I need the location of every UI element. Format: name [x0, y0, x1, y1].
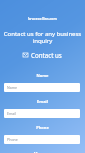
button[interactable]: Email	[4, 109, 80, 118]
button[interactable]: Email	[0, 50, 85, 60]
button[interactable]: Name	[4, 83, 80, 92]
staticText: Contact us for any business inquiry	[0, 30, 85, 45]
staticText: Phone	[7, 137, 18, 142]
staticText: Name	[7, 85, 18, 90]
button[interactable]: Phone	[4, 135, 80, 144]
staticText: Phone	[0, 125, 85, 130]
staticText: Name	[0, 73, 85, 78]
staticText: Message	[0, 151, 85, 153]
staticText: Contact us	[31, 51, 62, 59]
other: Email	[23, 53, 28, 57]
staticText: Email	[0, 99, 85, 104]
staticText: brucecollins.com	[0, 16, 85, 21]
staticText: Email	[7, 111, 17, 116]
